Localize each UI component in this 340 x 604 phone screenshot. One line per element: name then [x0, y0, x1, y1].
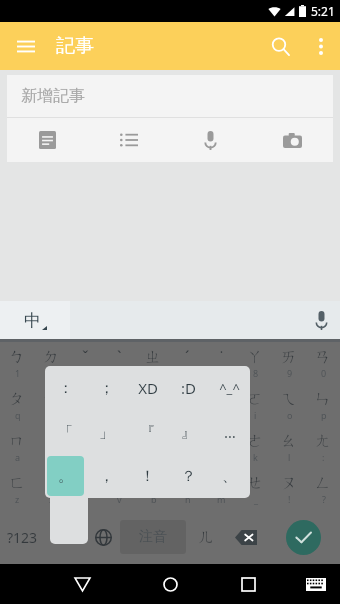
- button[interactable]: ㄩ: [204, 468, 238, 510]
- button[interactable]: ㄗ: [170, 384, 204, 426]
- button[interactable]: Recent apps: [228, 564, 268, 604]
- button[interactable]: ㄌ: [34, 468, 68, 510]
- button[interactable]: ㄍ: [68, 384, 102, 426]
- button[interactable]: ㄕ: [136, 426, 170, 468]
- button[interactable]: ㄧ: [204, 384, 238, 426]
- button[interactable]: ˋ: [102, 342, 136, 384]
- staticText: 1: [15, 367, 21, 379]
- staticText: ㄙ: [179, 473, 196, 493]
- button[interactable]: More options: [302, 27, 340, 65]
- staticText: ㄅ: [9, 347, 26, 367]
- button[interactable]: ㄛ: [238, 384, 272, 426]
- staticText: ㄜ: [247, 431, 264, 451]
- button[interactable]: ㄏ: [68, 468, 102, 510]
- button[interactable]: ㄟ: [272, 384, 306, 426]
- button[interactable]: Switch input language: [0, 301, 70, 339]
- staticText: ㄕ: [145, 431, 162, 451]
- button[interactable]: 』: [170, 412, 207, 452]
- button[interactable]: ？: [170, 456, 207, 496]
- button[interactable]: ㄖ: [136, 468, 170, 510]
- button[interactable]: 。: [47, 456, 84, 496]
- staticText: 記事: [56, 34, 94, 58]
- button[interactable]: Hide keyboard: [298, 566, 334, 602]
- button[interactable]: Voice input: [302, 301, 340, 339]
- button[interactable]: Delete: [226, 510, 266, 564]
- button[interactable]: 『: [129, 412, 166, 452]
- button[interactable]: New text note: [7, 118, 88, 162]
- staticText: ㄥ: [315, 473, 332, 493]
- button[interactable]: ^_^: [211, 368, 248, 408]
- button[interactable]: ㄝ: [238, 468, 272, 510]
- button[interactable]: 、: [211, 456, 248, 496]
- staticText: ㄗ: [179, 389, 196, 409]
- button[interactable]: ㄨ: [204, 426, 238, 468]
- button[interactable]: ；: [88, 368, 125, 408]
- button[interactable]: ㄅ: [0, 342, 34, 384]
- button[interactable]: 注音: [120, 520, 186, 554]
- button[interactable]: ㄙ: [170, 468, 204, 510]
- button[interactable]: ㄔ: [136, 384, 170, 426]
- button[interactable]: New list: [88, 118, 169, 162]
- button[interactable]: ，: [88, 456, 125, 496]
- button[interactable]: ㄇ: [0, 426, 34, 468]
- button[interactable]: ㄎ: [68, 426, 102, 468]
- button[interactable]: Change keyboard: [86, 510, 120, 564]
- button[interactable]: ㄊ: [34, 384, 68, 426]
- staticText: x: [49, 493, 54, 505]
- button[interactable]: ㄢ: [306, 342, 340, 384]
- button[interactable]: ㄋ: [34, 426, 68, 468]
- button[interactable]: ㄚ: [238, 342, 272, 384]
- staticText: ㄊ: [43, 389, 60, 409]
- staticText: 注音: [139, 528, 167, 546]
- button[interactable]: ㄞ: [272, 342, 306, 384]
- button[interactable]: Back: [62, 564, 102, 604]
- button[interactable]: ˊ: [170, 342, 204, 384]
- button[interactable]: ：: [47, 368, 84, 408]
- staticText: o: [287, 409, 293, 421]
- staticText: s: [49, 451, 54, 463]
- button[interactable]: ㄣ: [306, 384, 340, 426]
- button[interactable]: ㄦ: [186, 510, 226, 564]
- button[interactable]: ㄡ: [272, 468, 306, 510]
- button[interactable]: New voice note: [169, 118, 251, 162]
- button[interactable]: ㄈ: [0, 468, 34, 510]
- button[interactable]: 新增記事: [7, 75, 333, 162]
- button[interactable]: ！: [129, 456, 166, 496]
- staticText: 9: [287, 367, 293, 379]
- staticText: ㄨ: [213, 431, 230, 451]
- button[interactable]: Enter: [266, 510, 340, 564]
- button[interactable]: ㄜ: [238, 426, 272, 468]
- button[interactable]: ㄤ: [306, 426, 340, 468]
- button[interactable]: ㄒ: [102, 468, 136, 510]
- button[interactable]: ㄉ: [34, 342, 68, 384]
- button[interactable]: …: [211, 412, 248, 452]
- button[interactable]: ˇ: [68, 342, 102, 384]
- button[interactable]: New photo note: [251, 118, 333, 162]
- button[interactable]: Symbol tab: [50, 482, 88, 544]
- button[interactable]: ㄘ: [170, 426, 204, 468]
- button[interactable]: Search: [258, 24, 302, 68]
- button[interactable]: ㄥ: [306, 468, 340, 510]
- button[interactable]: Open navigation drawer: [8, 28, 44, 64]
- button[interactable]: XD: [129, 368, 166, 408]
- button[interactable]: 「: [47, 412, 84, 452]
- button[interactable]: :D: [170, 368, 207, 408]
- button[interactable]: ㄓ: [136, 342, 170, 384]
- button[interactable]: ㄑ: [102, 426, 136, 468]
- button[interactable]: ㄐ: [102, 384, 136, 426]
- button[interactable]: ˙: [204, 342, 238, 384]
- staticText: ^_^: [219, 379, 240, 397]
- button[interactable]: ?123: [0, 510, 44, 564]
- button[interactable]: ㄠ: [272, 426, 306, 468]
- button[interactable]: ㄆ: [0, 384, 34, 426]
- button[interactable]: 」: [88, 412, 125, 452]
- button[interactable]: Home: [150, 564, 190, 604]
